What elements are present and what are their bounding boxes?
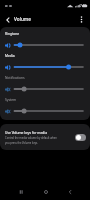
button[interactable]: Recents <box>13 184 28 199</box>
button[interactable]: Back <box>62 184 77 199</box>
staticText: Notifications <box>5 75 25 79</box>
staticText: 7:59 <box>80 4 87 8</box>
button[interactable]: Back <box>2 14 13 25</box>
staticText: Ringtone <box>5 31 20 35</box>
button[interactable]: More options <box>76 14 87 25</box>
button[interactable]: System <box>0 95 90 117</box>
button[interactable]: Ringtone <box>0 29 90 51</box>
button[interactable]: Notifications <box>0 73 90 95</box>
staticText: Media <box>5 53 15 57</box>
staticText: Use Volume keys for media <box>5 130 47 134</box>
staticText: Volume <box>14 16 31 22</box>
button[interactable]: Use Volume keys for media <box>0 124 90 150</box>
button[interactable]: Media <box>0 51 90 73</box>
button[interactable]: Home <box>38 184 53 199</box>
staticText: Control the media volume by default when… <box>5 136 61 144</box>
staticText: System <box>5 97 17 101</box>
